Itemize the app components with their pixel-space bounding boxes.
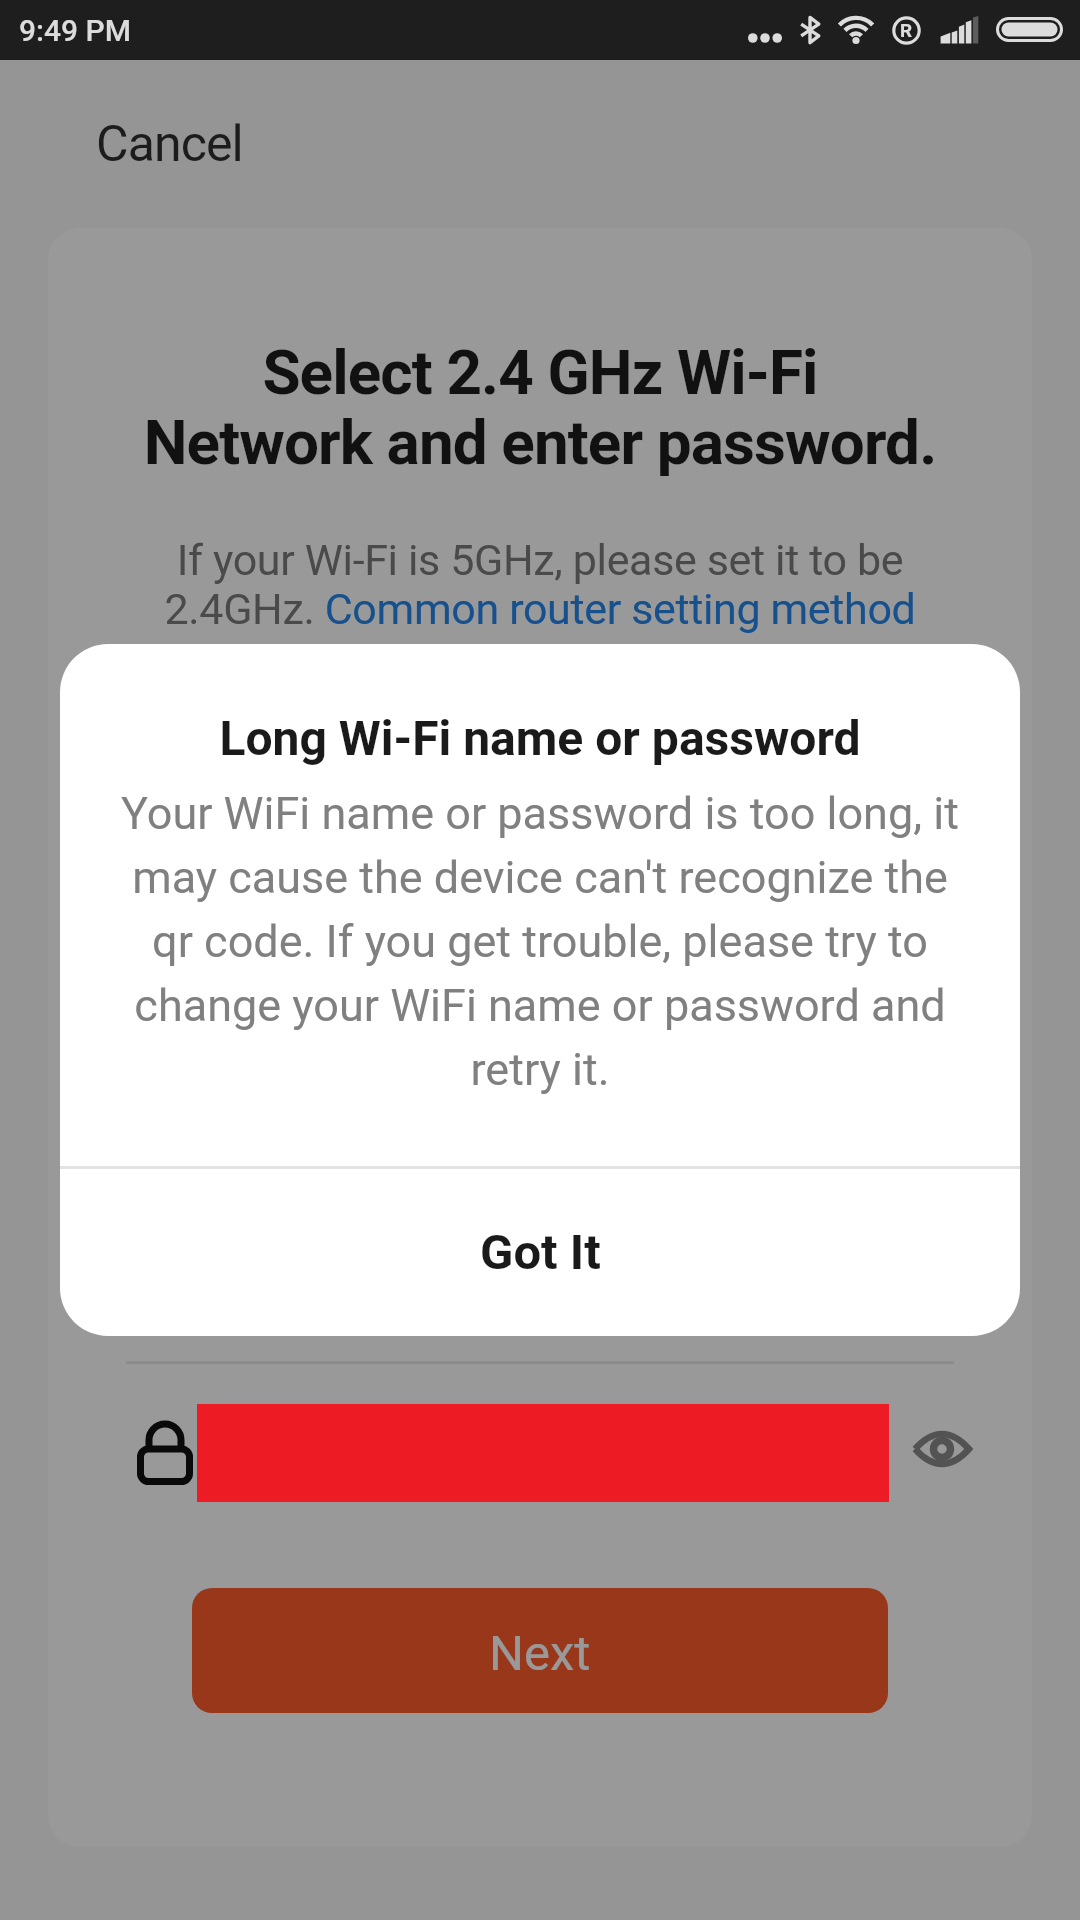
staticText: 9:49 PM	[19, 13, 132, 48]
staticText: Select 2.4 GHz Wi-Fi Network and enter p…	[80, 336, 1000, 479]
staticText: R	[900, 19, 913, 41]
button[interactable]: Next	[192, 1588, 888, 1713]
button[interactable]: Cancel	[78, 101, 261, 188]
button[interactable]: Show password	[894, 1401, 990, 1497]
staticText: Cancel	[96, 115, 243, 174]
button[interactable]: Wi-Fi	[126, 1048, 954, 1168]
staticText: Long Wi-Fi name or password	[219, 710, 861, 766]
button[interactable]: Got It	[60, 1169, 1020, 1336]
staticText: Got It	[480, 1224, 601, 1281]
staticText: If your Wi-Fi is 5GHz, please set it to …	[80, 535, 1000, 634]
staticText: Next	[489, 1625, 591, 1682]
staticText: Your WiFi name or password is too long, …	[115, 787, 965, 1096]
